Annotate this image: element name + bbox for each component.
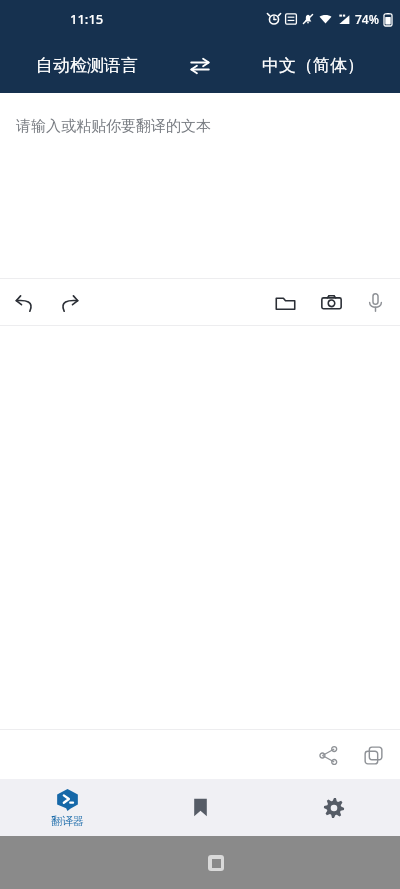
button[interactable]: Bookmarks: [134, 779, 267, 836]
button[interactable]: 请输入或粘贴你要翻译的文本: [0, 93, 400, 278]
staticText: 74%: [355, 11, 379, 27]
staticText: 翻译器: [51, 814, 84, 828]
button[interactable]: Undo: [4, 279, 46, 325]
button[interactable]: Redo: [46, 279, 92, 325]
staticText: 中文（简体）: [262, 55, 364, 76]
button[interactable]: Voice input: [354, 279, 396, 325]
button[interactable]: 翻译器: [0, 779, 134, 836]
button[interactable]: Copy: [352, 731, 394, 779]
button[interactable]: 自动检测语言: [0, 38, 174, 93]
staticText: 11:15: [70, 10, 104, 28]
button[interactable]: Swap languages: [174, 40, 226, 92]
button[interactable]: Settings: [267, 779, 400, 836]
staticText: 请输入或粘贴你要翻译的文本: [16, 117, 211, 136]
staticText: 自动检测语言: [36, 55, 138, 76]
button[interactable]: Recents: [196, 843, 236, 883]
button[interactable]: Share: [304, 731, 352, 779]
button[interactable]: Open file: [262, 279, 308, 325]
button[interactable]: Camera: [308, 279, 354, 325]
button[interactable]: 中文（简体）: [226, 38, 400, 93]
